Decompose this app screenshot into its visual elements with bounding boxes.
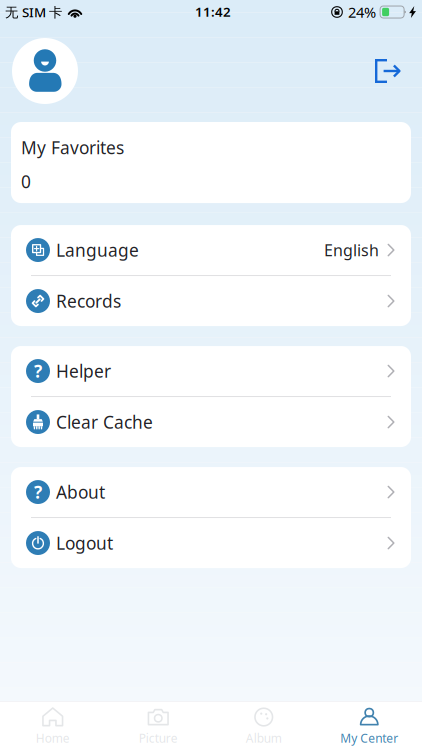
- button[interactable]: Logout: [11, 518, 411, 568]
- button[interactable]: Home: [0, 702, 105, 750]
- staticText: Clear Cache: [56, 410, 153, 433]
- staticText: My Favorites: [21, 136, 124, 159]
- staticText: Helper: [56, 359, 111, 382]
- staticText: Home: [36, 730, 70, 746]
- staticText: 11:42: [195, 3, 231, 20]
- button[interactable]: Clear Cache: [11, 397, 411, 447]
- staticText: ?: [34, 480, 42, 503]
- staticText: English: [324, 239, 379, 261]
- staticText: Album: [246, 730, 282, 746]
- staticText: 24%: [348, 2, 376, 22]
- button[interactable]: Picture: [105, 702, 211, 750]
- button[interactable]: Log out: [367, 46, 413, 90]
- staticText: Language: [56, 238, 139, 261]
- button[interactable]: Language: [11, 225, 411, 275]
- staticText: Picture: [139, 730, 178, 746]
- button[interactable]: Album: [211, 702, 316, 750]
- staticText: ?: [34, 359, 42, 382]
- staticText: Records: [56, 289, 121, 312]
- staticText: About: [56, 480, 105, 503]
- button[interactable]: ?: [11, 467, 411, 517]
- staticText: Logout: [56, 531, 113, 554]
- button[interactable]: ?: [11, 346, 411, 396]
- button[interactable]: My Center: [316, 702, 422, 750]
- staticText: My Center: [340, 730, 398, 746]
- staticText: 无 SIM 卡: [5, 3, 62, 21]
- button[interactable]: Records: [11, 276, 411, 326]
- staticText: 0: [21, 170, 31, 193]
